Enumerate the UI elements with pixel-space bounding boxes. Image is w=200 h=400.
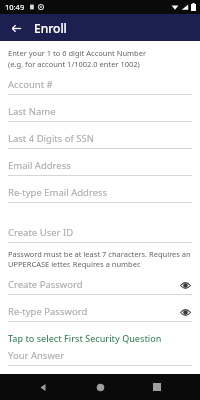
button[interactable]: Re-type Password (8, 302, 192, 322)
button[interactable]: Back (29, 374, 57, 400)
staticText: Last Name (8, 105, 56, 118)
staticText: Re-type Password (8, 305, 88, 318)
button[interactable]: Toggle password visibility (178, 305, 192, 319)
staticText: Email Address (8, 159, 71, 172)
button[interactable]: Home (86, 374, 114, 400)
button[interactable]: Recent apps (143, 374, 171, 400)
staticText: Password must be at least 7 characters. … (8, 249, 192, 269)
button[interactable]: Email Address (8, 156, 192, 176)
button[interactable]: Last 4 Digits of SSN (8, 129, 192, 149)
staticText: Account # (8, 78, 53, 91)
button[interactable]: Re-type Email Address (8, 183, 192, 203)
staticText: Tap to select First Security Question (8, 332, 162, 344)
staticText: Create Password (8, 278, 83, 291)
button[interactable]: Tap to select First Security Question (8, 329, 192, 346)
button[interactable]: Back (6, 18, 26, 38)
staticText: (e.g. for account 1/1002.0 enter 1002) (8, 59, 140, 69)
staticText: Create User ID (8, 226, 74, 239)
button[interactable]: Last Name (8, 102, 192, 122)
button[interactable]: Your Answer (8, 346, 192, 366)
button[interactable]: Create Password (8, 275, 192, 295)
staticText: 10:49 (5, 2, 25, 12)
staticText: Last 4 Digits of SSN (8, 132, 94, 145)
button[interactable]: Account # (8, 75, 192, 95)
staticText: Enroll (34, 20, 67, 36)
button[interactable]: Create User ID (8, 223, 192, 243)
button[interactable]: Toggle password visibility (178, 278, 192, 292)
staticText: Your Answer (8, 349, 65, 362)
staticText: Enter your 1 to 6 digit Account Number (8, 48, 147, 58)
staticText: Re-type Email Address (8, 186, 108, 199)
